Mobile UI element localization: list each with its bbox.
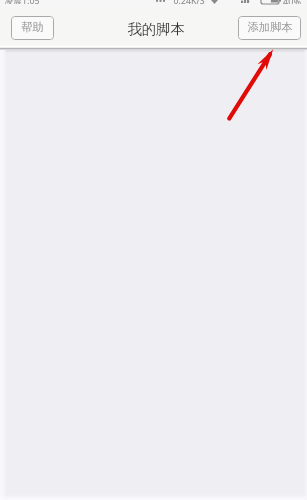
staticText: ••• (155, 0, 166, 3)
staticText: 凌晨1:05 (4, 0, 40, 4)
button[interactable]: 添加脚本 (238, 16, 301, 40)
staticText: 帮助 (21, 20, 44, 34)
staticText: 0.24K/S (173, 0, 205, 4)
staticText: 40% (283, 0, 301, 4)
staticText: 我的脚本 (127, 20, 185, 38)
staticText: 添加脚本 (247, 20, 293, 34)
button[interactable]: 帮助 (11, 16, 54, 40)
